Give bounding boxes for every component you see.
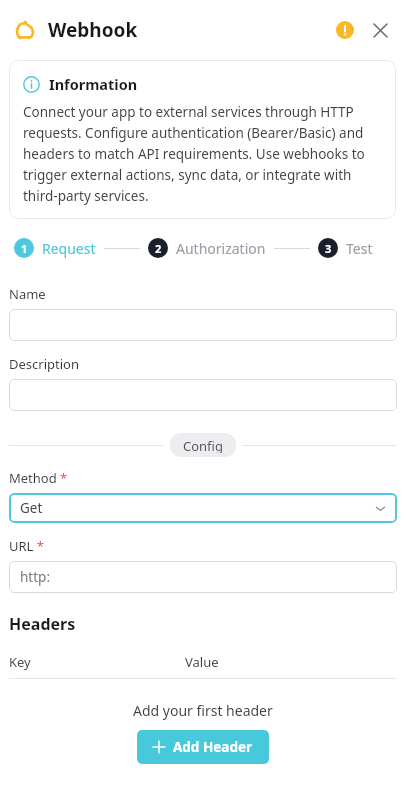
button[interactable]: Get bbox=[9, 493, 397, 523]
staticText: Get bbox=[20, 499, 43, 517]
staticText: Connect your app to external services th… bbox=[23, 103, 382, 205]
staticText: URL * bbox=[9, 537, 44, 555]
staticText: Value bbox=[185, 653, 219, 671]
button[interactable]: Add Header bbox=[137, 730, 269, 764]
staticText: Add Header bbox=[173, 738, 253, 756]
staticText: Add your first header bbox=[133, 701, 273, 720]
staticText: Authorization bbox=[176, 239, 266, 258]
button[interactable]: Warning bbox=[336, 21, 354, 39]
other: Webhook bbox=[12, 17, 38, 43]
staticText: Name bbox=[9, 285, 46, 303]
staticText: http: bbox=[20, 568, 51, 586]
staticText: 3 bbox=[325, 241, 332, 256]
button[interactable] bbox=[9, 309, 397, 341]
staticText: Request bbox=[42, 239, 96, 258]
staticText: 1 bbox=[21, 241, 28, 256]
staticText: Key bbox=[9, 653, 31, 671]
staticText: Config bbox=[183, 437, 223, 453]
staticText: Headers bbox=[9, 613, 76, 635]
staticText: Webhook bbox=[48, 17, 138, 43]
staticText: Description bbox=[9, 355, 79, 373]
button[interactable]: Close bbox=[368, 18, 392, 42]
staticText: Information bbox=[49, 74, 138, 94]
staticText: Method * bbox=[9, 469, 68, 487]
button[interactable] bbox=[9, 379, 397, 411]
staticText: 2 bbox=[155, 241, 162, 256]
button[interactable]: 2 bbox=[148, 236, 266, 260]
staticText: Test bbox=[346, 239, 373, 258]
button[interactable]: 3 bbox=[318, 236, 373, 260]
button[interactable]: http: bbox=[9, 561, 397, 593]
button[interactable]: 1 bbox=[14, 236, 96, 260]
